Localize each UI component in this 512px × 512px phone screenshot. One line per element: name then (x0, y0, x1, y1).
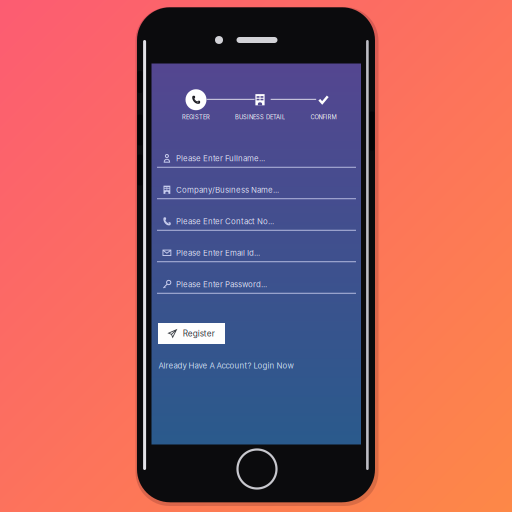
button[interactable]: Already Have A Account? Login Now (158, 361, 293, 370)
button[interactable]: BUSINESS DETAIL (235, 89, 285, 121)
button[interactable]: Please Enter Contact No... (157, 213, 356, 231)
staticText: Company/Business Name... (176, 185, 279, 194)
button[interactable]: Please Enter Password... (157, 276, 356, 294)
staticText: Please Enter Password... (176, 279, 267, 289)
staticText: CONFIRM (310, 114, 336, 121)
staticText: Please Enter Fullname... (176, 153, 265, 163)
button[interactable]: Please Enter Fullname... (157, 150, 356, 168)
staticText: Register (183, 328, 215, 338)
button[interactable]: REGISTER (182, 89, 210, 121)
button[interactable]: Company/Business Name... (157, 181, 356, 199)
staticText: Already Have A Account? Login Now (158, 361, 293, 370)
staticText: REGISTER (182, 114, 210, 121)
staticText: BUSINESS DETAIL (235, 114, 285, 121)
staticText: Please Enter Email Id... (176, 248, 260, 257)
button[interactable]: CONFIRM (310, 89, 336, 121)
button[interactable]: Register (158, 323, 225, 344)
staticText: Please Enter Contact No... (176, 216, 274, 226)
button[interactable]: Please Enter Email Id... (157, 244, 356, 262)
